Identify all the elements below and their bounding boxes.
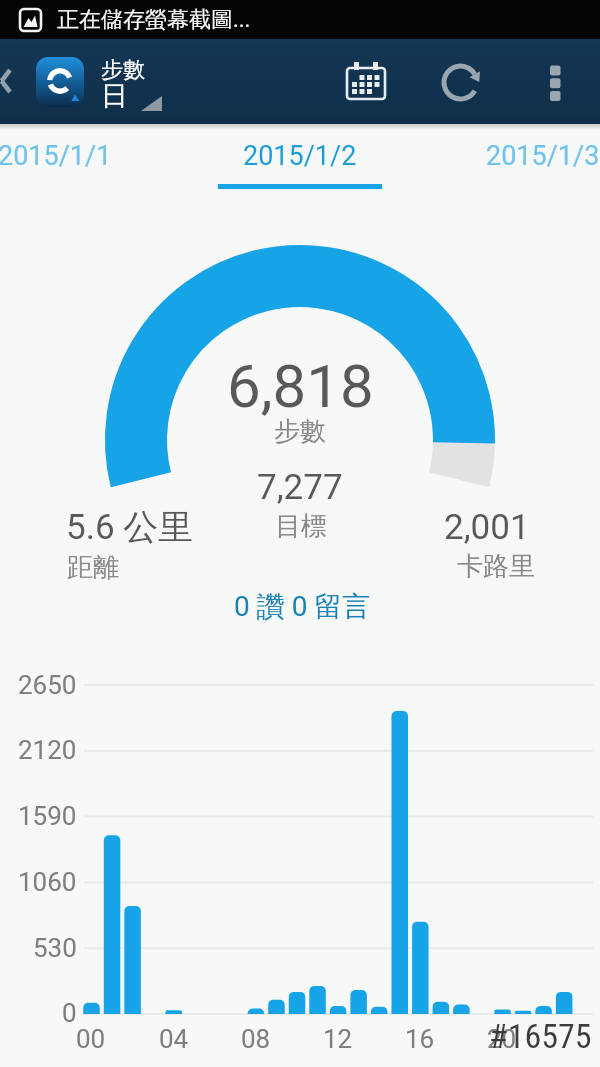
staticText: 530: [33, 933, 77, 963]
staticText: 6,818: [227, 351, 374, 421]
staticText: #16575: [489, 1016, 592, 1056]
button[interactable]: [200, 130, 400, 194]
staticText: 0 讚 0 留言: [234, 589, 371, 624]
staticText: 0: [62, 998, 77, 1028]
staticText: 7,277: [257, 467, 343, 508]
staticText: 2015/1/2: [243, 140, 357, 172]
staticText: 04: [159, 1024, 189, 1054]
staticText: 1590: [18, 801, 77, 831]
staticText: 16: [405, 1024, 435, 1054]
staticText: 正在儲存螢幕截圖...: [57, 6, 251, 34]
staticText: 目標: [275, 510, 327, 543]
staticText: 2120: [18, 735, 77, 765]
staticText: 日: [101, 79, 128, 113]
staticText: 1060: [18, 867, 77, 897]
staticText: 2015/1/1: [0, 140, 112, 172]
staticText: 2650: [18, 670, 77, 700]
button[interactable]: [0, 39, 95, 124]
button[interactable]: [520, 39, 585, 124]
staticText: 步數: [274, 415, 326, 448]
button[interactable]: [95, 39, 175, 124]
staticText: 08: [241, 1024, 271, 1054]
staticText: 2,001: [444, 507, 530, 548]
staticText: 5.6 公里: [66, 505, 194, 549]
staticText: 距離: [67, 551, 119, 584]
staticText: 步數: [101, 56, 145, 84]
button[interactable]: [0, 130, 140, 194]
staticText: 12: [323, 1024, 353, 1054]
button[interactable]: [460, 130, 600, 194]
staticText: 2015/1/3: [486, 140, 600, 172]
button[interactable]: [220, 585, 380, 630]
staticText: 20: [487, 1024, 517, 1054]
staticText: 00: [76, 1024, 106, 1054]
button[interactable]: [330, 39, 405, 124]
staticText: 卡路里: [457, 550, 535, 583]
button[interactable]: [425, 39, 497, 124]
